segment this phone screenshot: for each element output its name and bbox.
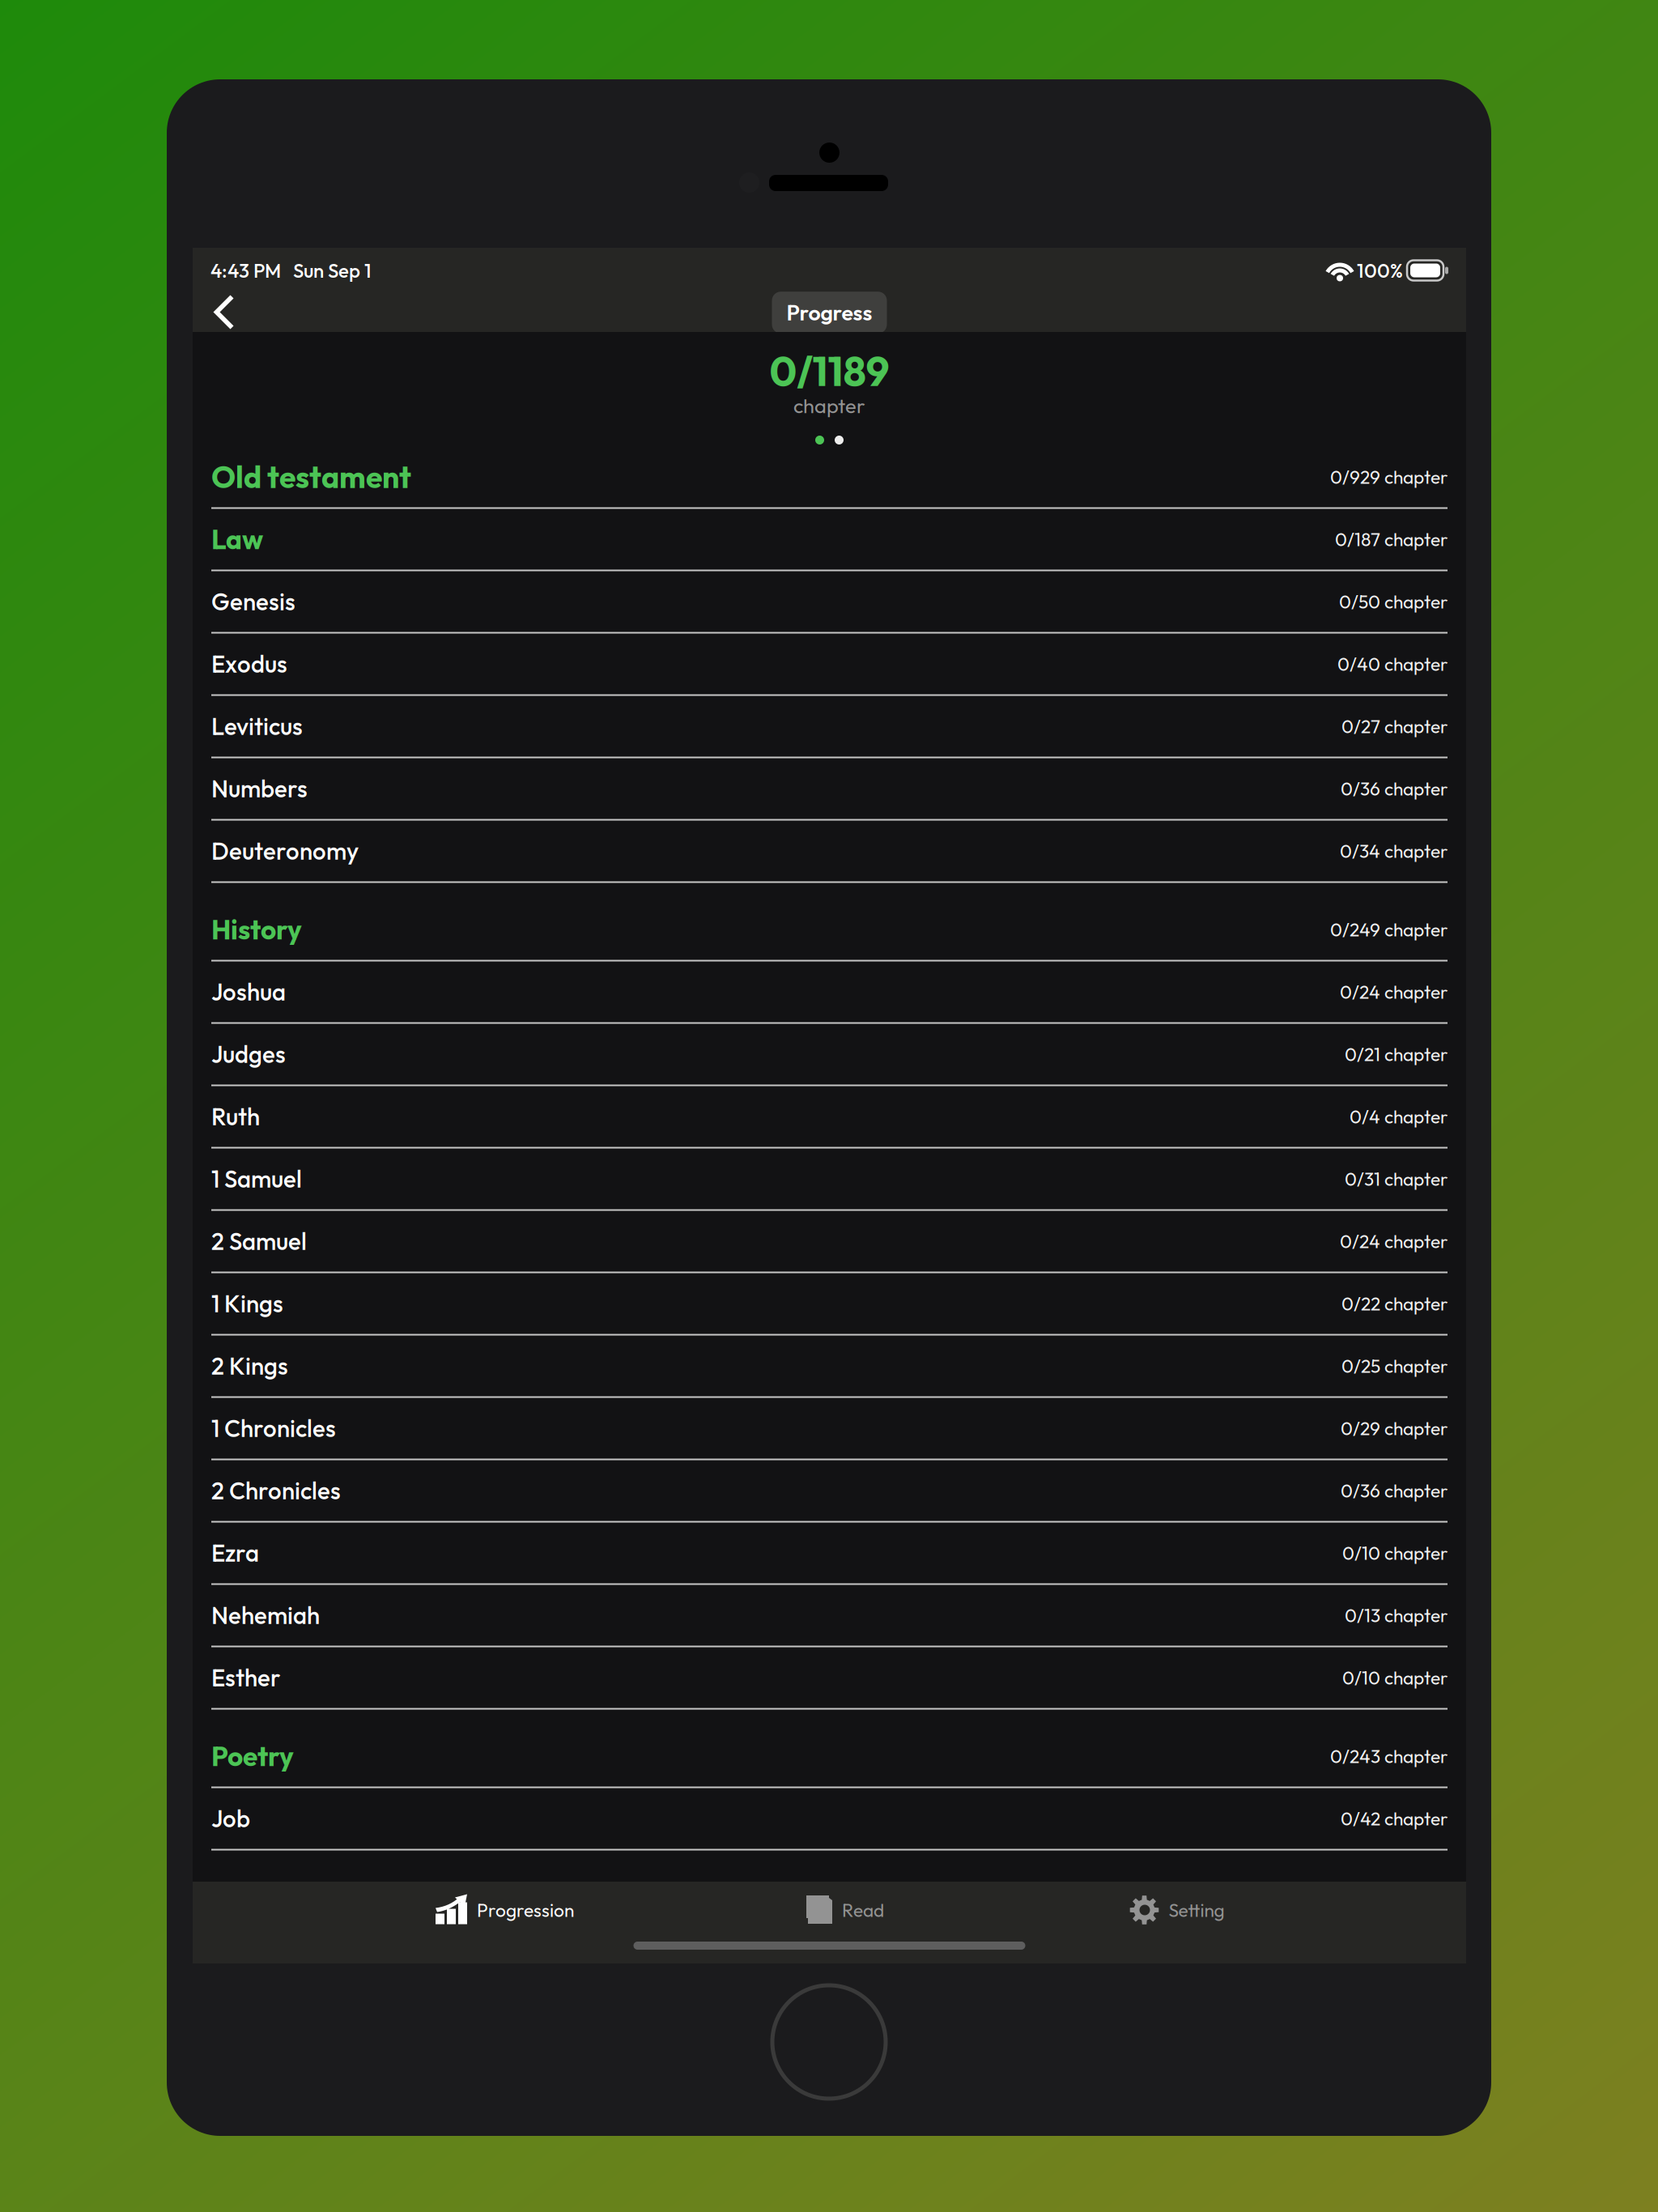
staticText: Judges [211,1039,286,1069]
staticText: 0/10 chapter [1342,1666,1448,1689]
button[interactable]: History [211,899,1448,961]
staticText: Progress [786,299,872,326]
button[interactable]: 2 Chronicles [211,1460,1448,1523]
staticText: Read [842,1898,884,1922]
staticText: 0/10 chapter [1342,1541,1448,1565]
staticText: 0/13 chapter [1345,1604,1448,1627]
staticText: chapter [793,393,865,419]
staticText: 2 Chronicles [211,1476,341,1506]
staticText: 0/1189 [769,345,889,397]
staticText: 0/929 chapter [1330,465,1448,488]
button[interactable]: Law [211,509,1448,571]
button[interactable]: Nehemiah [211,1585,1448,1647]
staticText: Setting [1169,1898,1224,1922]
button[interactable]: Setting [1129,1876,1225,1944]
staticText: 0/31 chapter [1345,1167,1448,1190]
staticText: 0/22 chapter [1341,1292,1448,1315]
button[interactable]: Deuteronomy [211,821,1448,883]
button[interactable]: Genesis [211,571,1448,634]
staticText: Genesis [211,587,295,617]
staticText: 0/24 chapter [1340,1230,1448,1253]
button[interactable]: 1 Chronicles [211,1398,1448,1460]
button[interactable]: Poetry [211,1726,1448,1788]
staticText: Old testament [211,458,411,496]
staticText: Sun Sep 1 [281,258,372,283]
button[interactable]: Ruth [211,1086,1448,1149]
staticText: Esther [211,1663,280,1693]
staticText: 0/187 chapter [1335,528,1448,551]
button[interactable]: Progress [772,292,887,333]
button[interactable]: Ezra [211,1523,1448,1585]
staticText: Ezra [211,1538,259,1568]
staticText: 0/24 chapter [1340,980,1448,1003]
staticText: 0/40 chapter [1337,652,1448,676]
staticText: 0/42 chapter [1341,1807,1448,1830]
button[interactable]: Old testament [211,447,1448,509]
staticText: Nehemiah [211,1600,320,1630]
staticText: History [211,912,302,946]
staticText: 0/36 chapter [1341,1479,1448,1502]
button[interactable]: Joshua [211,961,1448,1024]
staticText: 0/50 chapter [1339,590,1448,613]
staticText: 0/34 chapter [1340,839,1448,863]
staticText: 1 Kings [211,1289,283,1319]
staticText: Exodus [211,649,287,679]
button[interactable]: Progression [434,1876,576,1944]
staticText: Law [211,522,263,556]
button[interactable]: 1 Samuel [211,1149,1448,1211]
staticText: 0/36 chapter [1341,777,1448,800]
staticText: Poetry [211,1739,294,1773]
staticText: 100% [1353,258,1407,283]
staticText: 2 Kings [211,1351,288,1381]
button[interactable]: Numbers [211,758,1448,821]
staticText: Leviticus [211,711,303,741]
staticText: Job [211,1804,250,1833]
staticText: 0/4 chapter [1350,1105,1448,1128]
staticText: 0/29 chapter [1341,1417,1448,1440]
button[interactable]: Exodus [211,634,1448,696]
staticText: 1 Samuel [211,1164,302,1194]
button[interactable]: Read [805,1876,886,1944]
staticText: 0/249 chapter [1330,918,1448,941]
staticText: Joshua [211,977,286,1007]
staticText: 0/25 chapter [1341,1354,1448,1377]
button[interactable]: 1 Kings [211,1273,1448,1336]
button[interactable]: Esther [211,1647,1448,1710]
staticText: 1 Chronicles [211,1413,336,1443]
staticText: 0/243 chapter [1330,1745,1448,1768]
button[interactable]: 2 Kings [211,1336,1448,1398]
button[interactable]: Job [211,1788,1448,1850]
staticText: Deuteronomy [211,836,359,866]
button[interactable]: Back [204,293,243,332]
button[interactable]: 2 Samuel [211,1211,1448,1273]
staticText: Progression [477,1898,574,1922]
button[interactable]: Leviticus [211,696,1448,758]
staticText: Numbers [211,774,308,804]
staticText: 0/21 chapter [1345,1043,1448,1066]
staticText: 2 Samuel [211,1226,307,1256]
staticText: 4:43 PM [210,258,281,283]
staticText: Ruth [211,1102,260,1132]
button[interactable]: Judges [211,1024,1448,1086]
staticText: 0/27 chapter [1341,715,1448,738]
